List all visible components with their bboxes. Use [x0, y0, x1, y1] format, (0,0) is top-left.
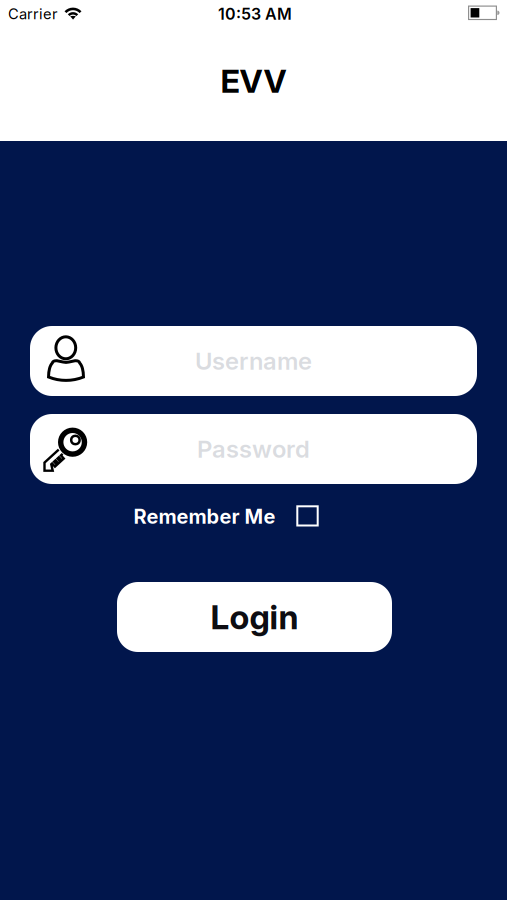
staticText: Login — [210, 597, 298, 637]
staticText: Username — [195, 347, 312, 375]
staticText: Carrier — [8, 5, 58, 23]
button[interactable]: Username — [30, 326, 477, 396]
staticText: 10:53 AM — [218, 5, 292, 23]
button[interactable]: Password — [30, 414, 477, 484]
button[interactable]: Login — [117, 582, 392, 652]
staticText: Password — [197, 435, 310, 463]
staticText: Remember Me — [133, 505, 275, 528]
button[interactable]: Remember Me — [296, 505, 319, 526]
staticText: EVV — [220, 62, 286, 100]
